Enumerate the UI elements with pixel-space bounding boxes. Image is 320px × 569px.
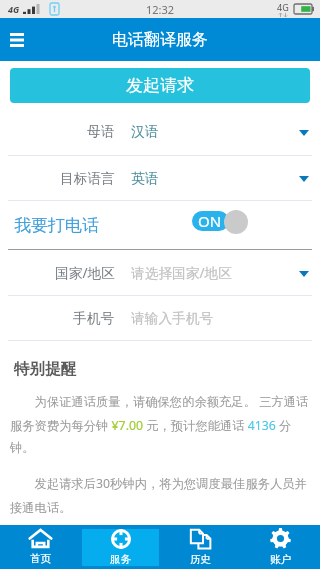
button[interactable]: 服务: [80, 525, 160, 569]
staticText: 12:32: [146, 2, 175, 17]
staticText: 我要打电话: [14, 215, 99, 236]
staticText: 账户: [270, 553, 291, 566]
staticText: 首页: [30, 552, 51, 565]
staticText: 4G: [277, 1, 289, 13]
button[interactable]: 母语: [0, 108, 320, 155]
staticText: 特别提醒: [14, 359, 76, 379]
staticText: 目标语言: [60, 170, 115, 187]
staticText: 英语: [131, 170, 159, 187]
staticText: 服务: [110, 553, 131, 566]
staticText: 母语: [87, 123, 115, 140]
staticText: 请输入手机号: [131, 310, 214, 327]
button[interactable]: 国家/地区: [0, 250, 320, 295]
staticText: 为保证通话质量，请确保您的余额充足。 三方通话服务资费为每分钟 ¥7.00 元，…: [10, 393, 312, 455]
button[interactable]: 账户: [240, 525, 320, 569]
staticText: 汉语: [131, 123, 159, 140]
button[interactable]: Toggle outgoing call: [192, 209, 249, 235]
staticText: 发起请求后30秒钟内，将为您调度最佳服务人员并接通电话。: [10, 475, 312, 515]
staticText: 电话翻译服务: [112, 30, 208, 50]
staticText: 发起请求: [126, 75, 194, 96]
button[interactable]: Menu: [0, 23, 34, 57]
staticText: 4G: [8, 3, 20, 15]
button[interactable]: 首页: [0, 525, 80, 569]
staticText: 手机号: [73, 310, 115, 327]
button[interactable]: 历史: [160, 525, 240, 569]
button[interactable]: 目标语言: [0, 156, 320, 200]
staticText: 请选择国家/地区: [131, 263, 232, 282]
staticText: 历史: [190, 553, 211, 566]
button[interactable]: 手机号: [0, 296, 320, 340]
staticText: 国家/地区: [55, 263, 115, 282]
button[interactable]: 发起请求: [10, 68, 310, 103]
staticText: ON: [198, 211, 222, 231]
